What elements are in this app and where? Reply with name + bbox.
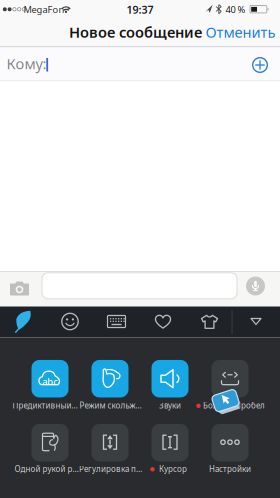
staticText: 19:37: [126, 2, 153, 17]
staticText: Новое сообщение: [69, 22, 202, 42]
button[interactable]: [151, 360, 188, 397]
staticText: Звуки: [159, 400, 181, 411]
button[interactable]: [200, 314, 218, 329]
button[interactable]: [211, 360, 248, 397]
button[interactable]: [151, 424, 188, 461]
button[interactable]: [14, 310, 32, 333]
staticText: Режим скольж…: [79, 400, 141, 411]
staticText: Регулировка п…: [79, 464, 142, 474]
staticText: Кому:: [6, 54, 46, 73]
staticText: 40 %: [225, 3, 245, 15]
staticText: Одной рукой р…: [14, 464, 78, 474]
button[interactable]: [246, 276, 265, 295]
button[interactable]: abc: [31, 360, 68, 397]
button[interactable]: [60, 312, 79, 331]
staticText: Настройки: [209, 464, 251, 474]
staticText: Предиктивный…: [12, 400, 77, 411]
button[interactable]: [211, 424, 248, 461]
staticText: Отменить: [205, 22, 275, 42]
staticText: abc: [42, 375, 58, 388]
button[interactable]: [91, 424, 128, 461]
button[interactable]: [91, 360, 128, 397]
button[interactable]: [9, 280, 30, 296]
button[interactable]: [31, 424, 68, 461]
button[interactable]: [250, 317, 262, 325]
button[interactable]: [106, 314, 126, 328]
staticText: MegaFon: [23, 3, 64, 15]
button[interactable]: Отменить: [205, 22, 275, 42]
staticText: Больше Пробел: [203, 400, 265, 411]
button[interactable]: [252, 57, 268, 73]
button[interactable]: [154, 314, 171, 329]
staticText: Курсор: [159, 464, 187, 474]
